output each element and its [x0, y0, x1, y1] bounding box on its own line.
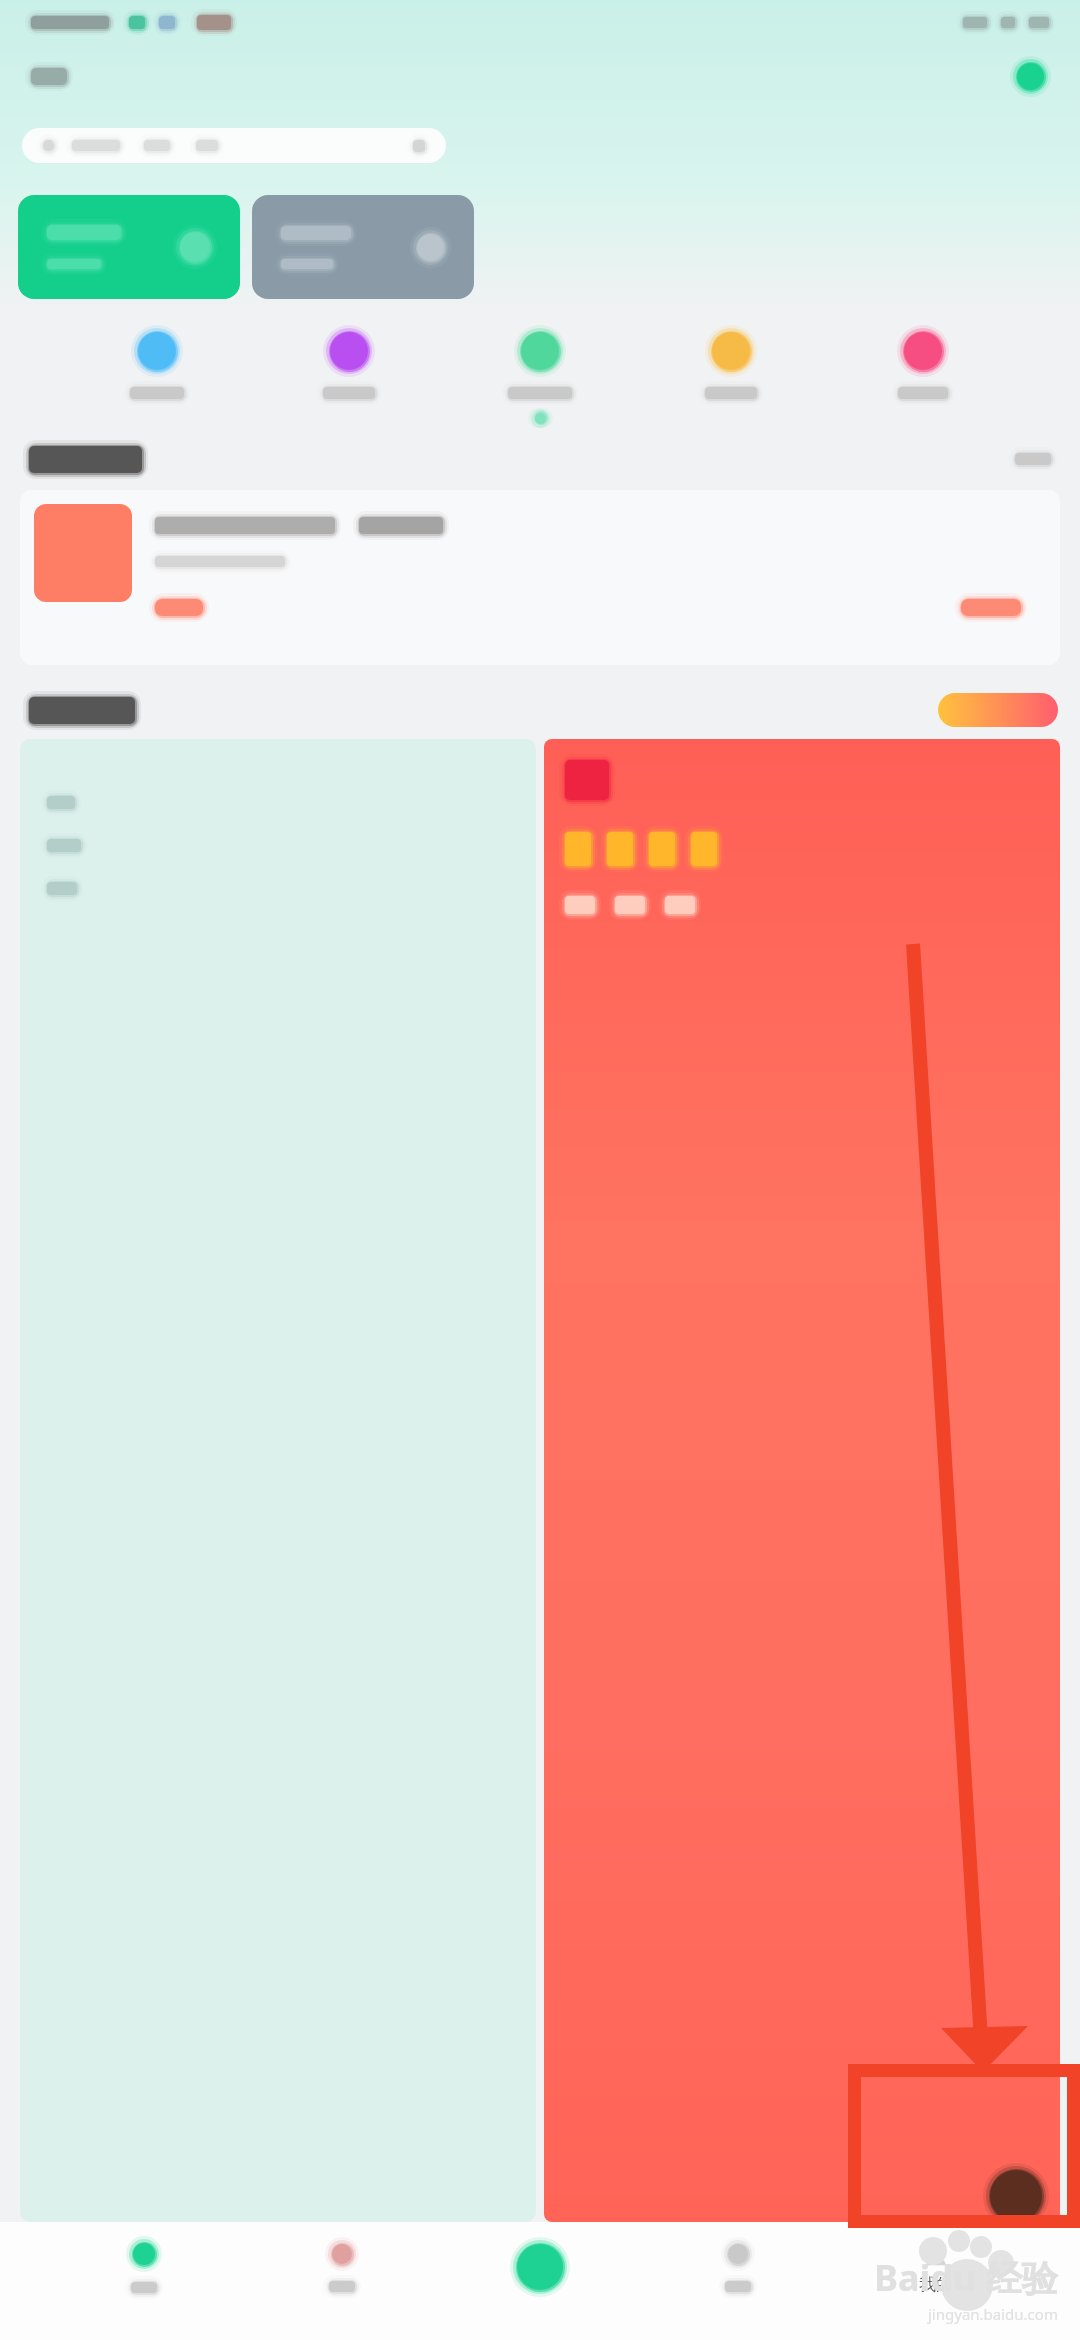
- button[interactable]: Cart: [684, 2236, 792, 2299]
- button[interactable]: [496, 312, 584, 406]
- button[interactable]: [305, 312, 393, 406]
- button[interactable]: [544, 739, 1060, 2222]
- staticText: 我的: [919, 2274, 953, 2295]
- button[interactable]: [1008, 446, 1058, 472]
- button[interactable]: [22, 128, 446, 163]
- button[interactable]: [938, 693, 1058, 727]
- button[interactable]: Profile: [1009, 55, 1052, 98]
- button[interactable]: [252, 195, 474, 299]
- button[interactable]: [18, 195, 240, 299]
- staticText: jingyan.baidu.com: [928, 2304, 1058, 2324]
- button[interactable]: Orders: [288, 2236, 396, 2299]
- button[interactable]: [20, 490, 1060, 665]
- button[interactable]: Home: [90, 2235, 198, 2300]
- button[interactable]: [687, 312, 775, 406]
- button[interactable]: Scan: [486, 2236, 594, 2298]
- button[interactable]: 我的: [882, 2240, 990, 2295]
- button[interactable]: [879, 312, 967, 406]
- button[interactable]: [113, 312, 201, 406]
- staticText: Baidu 经验: [874, 2253, 1058, 2302]
